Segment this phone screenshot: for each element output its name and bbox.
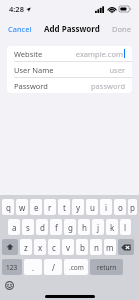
- staticText: Password: [14, 81, 48, 91]
- button[interactable]: i: [100, 199, 112, 215]
- staticText: j: [97, 222, 100, 233]
- staticText: f: [55, 222, 58, 233]
- staticText: g: [68, 222, 73, 233]
- button[interactable]: .: [24, 259, 42, 275]
- staticText: .com: [69, 263, 84, 272]
- button[interactable]: s: [22, 219, 34, 235]
- staticText: x: [38, 242, 43, 253]
- staticText: t: [63, 202, 66, 213]
- button[interactable]: 123: [2, 259, 22, 275]
- staticText: l: [124, 222, 127, 233]
- staticText: user: [109, 65, 125, 75]
- button[interactable]: .com: [64, 259, 88, 275]
- staticText: b: [80, 242, 85, 253]
- button[interactable]: t: [58, 199, 70, 215]
- button[interactable]: h: [78, 219, 90, 235]
- staticText: m: [106, 242, 114, 253]
- button[interactable]: a: [8, 219, 20, 235]
- button[interactable]: n: [90, 239, 102, 255]
- staticText: a: [12, 222, 17, 233]
- button[interactable]: Cancel: [6, 21, 34, 37]
- button[interactable]: User Name: [7, 62, 132, 77]
- staticText: k: [110, 222, 115, 233]
- staticText: 123: [6, 263, 18, 272]
- staticText: w: [19, 202, 26, 213]
- staticText: c: [52, 242, 56, 253]
- staticText: User Name: [14, 65, 54, 75]
- button[interactable]: f: [50, 219, 62, 235]
- button[interactable]: Backspace: [118, 239, 134, 255]
- button[interactable]: q: [2, 199, 14, 215]
- staticText: return: [97, 263, 117, 272]
- button[interactable]: m: [104, 239, 116, 255]
- staticText: z: [24, 242, 28, 253]
- staticText: Add Password: [44, 23, 100, 34]
- button[interactable]: Shift: [2, 239, 18, 255]
- button[interactable]: e: [30, 199, 42, 215]
- staticText: v: [66, 242, 71, 253]
- button[interactable]: r: [44, 199, 56, 215]
- button[interactable]: u: [86, 199, 98, 215]
- staticText: password: [91, 81, 125, 91]
- button[interactable]: l: [120, 219, 131, 235]
- button[interactable]: /: [44, 259, 62, 275]
- button[interactable]: w: [16, 199, 28, 215]
- staticText: e: [34, 202, 39, 213]
- button[interactable]: o: [114, 199, 126, 215]
- button[interactable]: x: [34, 239, 46, 255]
- staticText: example.com: [75, 49, 123, 59]
- button[interactable]: d: [36, 219, 48, 235]
- button[interactable]: z: [20, 239, 32, 255]
- staticText: y: [76, 202, 81, 213]
- staticText: /: [52, 262, 55, 273]
- staticText: i: [105, 202, 108, 213]
- button[interactable]: g: [64, 219, 76, 235]
- button[interactable]: b: [76, 239, 88, 255]
- button[interactable]: c: [48, 239, 60, 255]
- staticText: h: [82, 222, 87, 233]
- staticText: p: [130, 202, 135, 213]
- button[interactable]: Emoji keyboard: [5, 281, 14, 290]
- staticText: 4:28: [9, 4, 24, 14]
- staticText: r: [48, 202, 52, 213]
- staticText: u: [90, 202, 95, 213]
- button[interactable]: return: [90, 259, 123, 275]
- staticText: Website: [14, 49, 43, 59]
- staticText: q: [6, 202, 11, 213]
- button[interactable]: j: [92, 219, 104, 235]
- button[interactable]: y: [72, 199, 84, 215]
- staticText: n: [94, 242, 99, 253]
- staticText: Cancel: [8, 24, 32, 34]
- button[interactable]: Website: [7, 46, 132, 61]
- button[interactable]: v: [62, 239, 74, 255]
- staticText: .: [32, 262, 35, 273]
- staticText: s: [26, 222, 30, 233]
- staticText: o: [118, 202, 123, 213]
- staticText: d: [40, 222, 45, 233]
- staticText: Done: [112, 24, 131, 34]
- button[interactable]: p: [128, 199, 137, 215]
- button[interactable]: Password: [7, 78, 132, 93]
- button[interactable]: k: [106, 219, 118, 235]
- button[interactable]: Done: [110, 21, 133, 37]
